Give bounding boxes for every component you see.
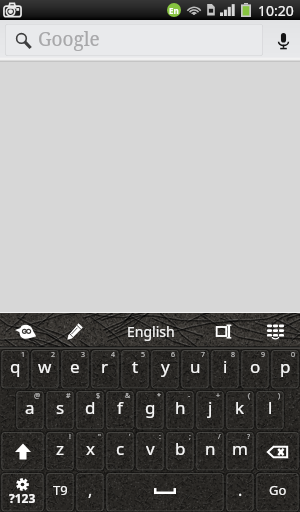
button[interactable]: c — [105, 431, 135, 472]
staticText: 8 — [231, 350, 236, 360]
staticText: y — [161, 355, 170, 378]
staticText: b — [175, 437, 186, 460]
button[interactable]: z — [45, 431, 75, 472]
staticText: o — [250, 355, 261, 378]
button[interactable]: English — [127, 322, 175, 341]
button[interactable]: Voice search — [270, 20, 296, 62]
staticText: w — [38, 355, 52, 378]
button[interactable]: l — [255, 390, 285, 431]
staticText: n — [205, 437, 216, 460]
staticText: Go — [269, 481, 287, 499]
button[interactable]: m — [225, 431, 255, 472]
staticText: En — [169, 5, 179, 16]
button[interactable]: w — [30, 349, 60, 390]
button[interactable]: x — [75, 431, 105, 472]
staticText: 4 — [111, 350, 116, 360]
staticText: l — [268, 396, 273, 419]
staticText: e — [70, 355, 80, 378]
staticText: h — [175, 396, 186, 419]
staticText: t — [132, 355, 139, 378]
button[interactable]: Google — [5, 24, 263, 56]
staticText: 3 — [81, 350, 86, 360]
staticText: " — [98, 432, 101, 442]
button[interactable]: n — [195, 431, 225, 472]
button[interactable]: y — [150, 349, 180, 390]
button[interactable]: Edit — [62, 313, 90, 349]
button[interactable]: r — [90, 349, 120, 390]
button[interactable]: More — [262, 313, 292, 349]
button[interactable]: Backspace — [255, 431, 300, 472]
staticText: z — [56, 437, 64, 460]
staticText: s — [56, 396, 65, 419]
staticText: English — [127, 322, 175, 341]
staticText: q — [10, 355, 21, 378]
staticText: c — [116, 437, 125, 460]
button[interactable]: g — [135, 390, 165, 431]
button[interactable]: p — [270, 349, 300, 390]
staticText: + — [216, 391, 221, 401]
staticText: 5 — [141, 350, 146, 360]
staticText: p — [280, 355, 291, 378]
staticText: j — [208, 396, 213, 419]
staticText: 0 — [291, 350, 296, 360]
button[interactable]: Keyboard layout — [210, 313, 238, 349]
staticText: * — [157, 391, 161, 401]
button[interactable]: Go — [255, 472, 300, 512]
staticText: : — [159, 432, 161, 442]
button[interactable]: u — [180, 349, 210, 390]
staticText: ' — [129, 432, 131, 442]
staticText: Google — [38, 26, 100, 52]
button[interactable]: i — [210, 349, 240, 390]
button[interactable]: b — [165, 431, 195, 472]
button[interactable]: j — [195, 390, 225, 431]
button[interactable]: v — [135, 431, 165, 472]
staticText: v — [146, 437, 155, 460]
staticText: ) — [278, 391, 281, 401]
button[interactable]: Shift — [0, 431, 45, 472]
button[interactable]: e — [60, 349, 90, 390]
staticText: 6 — [171, 350, 176, 360]
button[interactable]: s — [45, 390, 75, 431]
button[interactable]: Space — [105, 472, 225, 512]
button[interactable]: Screenshot — [3, 2, 22, 18]
button[interactable]: a — [15, 390, 45, 431]
staticText: r — [101, 355, 109, 378]
staticText: 9 — [261, 350, 266, 360]
staticText: ? — [247, 432, 251, 442]
staticText: 7 — [201, 350, 206, 360]
staticText: k — [235, 396, 245, 419]
button[interactable]: Symbols — [0, 472, 45, 512]
staticText: $ — [96, 391, 101, 401]
staticText: ! — [69, 432, 71, 442]
button[interactable]: h — [165, 390, 195, 431]
staticText: ?123 — [9, 490, 36, 506]
staticText: m — [232, 437, 248, 460]
staticText: - — [188, 391, 191, 401]
staticText: f — [117, 396, 123, 419]
button[interactable]: t — [120, 349, 150, 390]
button[interactable]: k — [225, 390, 255, 431]
button[interactable]: o — [240, 349, 270, 390]
staticText: ; — [189, 432, 191, 442]
button[interactable]: q — [0, 349, 30, 390]
staticText: @ — [34, 391, 41, 401]
staticText: i — [223, 355, 228, 378]
staticText: u — [190, 355, 201, 378]
staticText: # — [66, 391, 71, 401]
button[interactable]: f — [105, 390, 135, 431]
staticText: 2 — [51, 350, 56, 360]
staticText: x — [86, 437, 95, 460]
staticText: , — [88, 479, 93, 501]
button[interactable]: T9 — [45, 472, 75, 512]
staticText: T9 — [53, 481, 68, 499]
button[interactable]: . — [225, 472, 255, 512]
button[interactable]: d — [75, 390, 105, 431]
button[interactable]: GO Keyboard — [10, 313, 44, 349]
staticText: / — [218, 432, 221, 442]
staticText: d — [85, 396, 96, 419]
staticText: g — [145, 396, 156, 419]
staticText: ( — [248, 391, 251, 401]
button[interactable]: , — [75, 472, 105, 512]
staticText: a — [25, 396, 35, 419]
staticText: 1 — [21, 350, 26, 360]
